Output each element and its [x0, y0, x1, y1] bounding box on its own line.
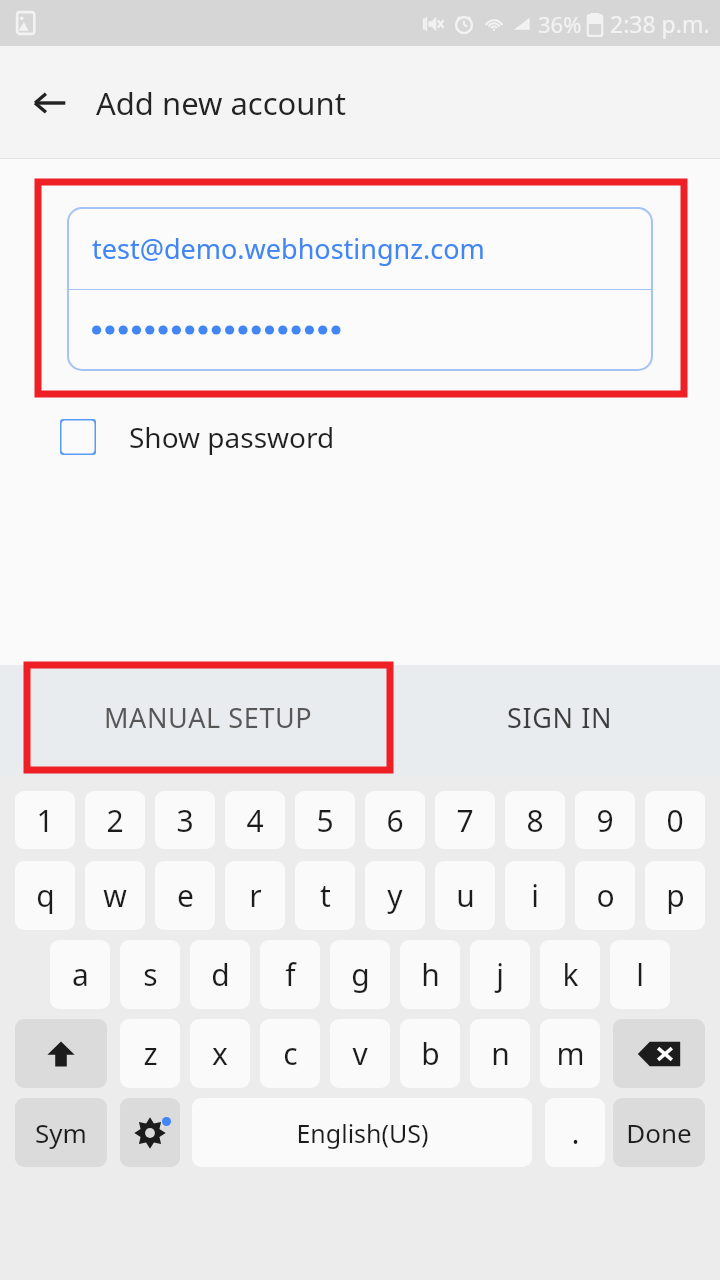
staticText: 8 [526, 800, 544, 841]
button[interactable]: test@demo.webhostingnz.com [68, 208, 652, 289]
button[interactable]: t [295, 861, 355, 930]
staticText: z [143, 1033, 158, 1074]
button[interactable]: l [610, 940, 670, 1009]
staticText: o [596, 875, 615, 916]
button[interactable]: g [330, 940, 390, 1009]
staticText: h [421, 954, 440, 995]
staticText: 36% [538, 9, 582, 39]
staticText: Done [626, 1115, 692, 1150]
button[interactable]: 7 [435, 791, 495, 849]
staticText: a [72, 954, 89, 995]
button[interactable]: 4 [225, 791, 285, 849]
button[interactable]: . [545, 1098, 605, 1167]
button[interactable]: Keyboard settings [120, 1098, 180, 1167]
button[interactable]: f [260, 940, 320, 1009]
button[interactable]: Show password [60, 407, 335, 467]
staticText: 1 [36, 800, 54, 841]
button[interactable]: e [155, 861, 215, 930]
staticText: c [283, 1033, 298, 1074]
button[interactable]: w [85, 861, 145, 930]
staticText: test@demo.webhostingnz.com [92, 230, 485, 267]
staticText: 0 [666, 800, 684, 841]
button[interactable]: 9 [575, 791, 635, 849]
staticText: Sym [35, 1115, 87, 1150]
staticText: x [212, 1033, 228, 1074]
staticText: u [456, 875, 475, 916]
button[interactable]: h [400, 940, 460, 1009]
staticText: p [666, 875, 685, 916]
button[interactable]: n [470, 1019, 530, 1088]
button[interactable]: v [330, 1019, 390, 1088]
button[interactable]: i [505, 861, 565, 930]
button[interactable]: SIGN IN [400, 665, 720, 770]
staticText: y [387, 875, 403, 916]
button[interactable]: Done [613, 1098, 705, 1167]
staticText: 2:38 p.m. [610, 8, 710, 39]
button[interactable]: 3 [155, 791, 215, 849]
button[interactable]: j [470, 940, 530, 1009]
staticText: l [636, 954, 644, 995]
staticText: k [562, 954, 579, 995]
staticText: MANUAL SETUP [104, 699, 313, 736]
staticText: j [496, 954, 504, 995]
staticText: v [352, 1033, 368, 1074]
button[interactable]: q [15, 861, 75, 930]
staticText: i [531, 875, 539, 916]
button[interactable]: r [225, 861, 285, 930]
button[interactable]: u [435, 861, 495, 930]
button[interactable]: z [120, 1019, 180, 1088]
staticText: n [491, 1033, 510, 1074]
staticText: 9 [596, 800, 614, 841]
button[interactable]: 2 [85, 791, 145, 849]
button[interactable]: 6 [365, 791, 425, 849]
button[interactable]: o [575, 861, 635, 930]
staticText: s [143, 954, 158, 995]
staticText: b [421, 1033, 440, 1074]
button[interactable]: a [50, 940, 110, 1009]
staticText: t [320, 875, 331, 916]
staticText: d [211, 954, 230, 995]
button[interactable] [68, 290, 652, 370]
button[interactable]: 8 [505, 791, 565, 849]
button[interactable]: Shift [15, 1019, 107, 1088]
button[interactable]: s [120, 940, 180, 1009]
staticText: 5 [316, 800, 334, 841]
button[interactable]: Backspace [613, 1019, 705, 1088]
staticText: Add new account [96, 82, 346, 124]
button[interactable]: MANUAL SETUP [27, 665, 390, 770]
button[interactable]: d [190, 940, 250, 1009]
staticText: 2 [106, 800, 124, 841]
staticText: Show password [129, 418, 335, 456]
staticText: q [36, 875, 55, 916]
button[interactable]: k [540, 940, 600, 1009]
staticText: SIGN IN [507, 699, 613, 736]
staticText: g [351, 954, 370, 995]
staticText: 7 [456, 800, 474, 841]
button[interactable]: Sym [15, 1098, 107, 1167]
button[interactable]: 0 [645, 791, 705, 849]
button[interactable]: English(US) [192, 1098, 532, 1167]
button[interactable]: x [190, 1019, 250, 1088]
button[interactable]: p [645, 861, 705, 930]
staticText: f [285, 954, 296, 995]
staticText: r [249, 875, 262, 916]
button[interactable]: 1 [15, 791, 75, 849]
staticText: 4 [246, 800, 264, 841]
button[interactable]: b [400, 1019, 460, 1088]
staticText: m [556, 1033, 585, 1074]
button[interactable]: y [365, 861, 425, 930]
staticText: . [571, 1112, 580, 1153]
button[interactable]: 5 [295, 791, 355, 849]
staticText: w [103, 875, 127, 916]
button[interactable]: c [260, 1019, 320, 1088]
staticText: 6 [386, 800, 404, 841]
staticText: e [177, 875, 194, 916]
button[interactable]: Back [18, 71, 82, 135]
button[interactable]: m [540, 1019, 600, 1088]
staticText: 3 [176, 800, 194, 841]
staticText: English(US) [296, 1116, 429, 1150]
